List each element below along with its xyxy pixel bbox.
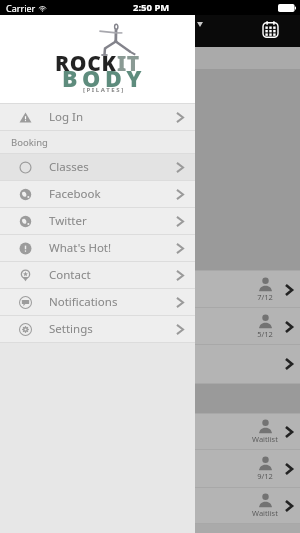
button[interactable]: 5/12 <box>0 308 300 344</box>
button[interactable]: Log In <box>0 104 195 130</box>
staticText: 9/12 <box>257 471 273 481</box>
staticText: Waitlist <box>252 434 278 444</box>
button[interactable]: Classes <box>0 154 195 180</box>
button[interactable]: Settings <box>0 316 195 342</box>
staticText: Facebook <box>49 186 101 202</box>
staticText: Twitter <box>49 213 87 229</box>
staticText: Log In <box>49 109 84 125</box>
button[interactable]: 9/12 <box>0 450 300 487</box>
staticText: Carrier <box>6 2 36 14</box>
staticText: BODY <box>62 62 147 93</box>
staticText: IT <box>117 49 140 78</box>
staticText: 5/12 <box>257 329 273 339</box>
staticText: What's Hot! <box>49 240 112 256</box>
button[interactable]: Twitter <box>0 208 195 234</box>
button[interactable]: Waitlist <box>0 488 300 523</box>
button[interactable]: Contact <box>0 262 195 288</box>
staticText: ROCK <box>55 49 117 78</box>
button[interactable]: 7/12 <box>0 271 300 307</box>
button[interactable]: Notifications <box>0 289 195 315</box>
staticText: Settings <box>49 321 93 337</box>
staticText: Waitlist <box>252 508 278 518</box>
button[interactable] <box>0 345 300 383</box>
staticText: [ P I L A T E S ] <box>83 86 124 94</box>
staticText: 7/12 <box>257 292 273 302</box>
staticText: Booking <box>11 136 48 149</box>
staticText: Contact <box>49 267 91 283</box>
staticText: Classes <box>49 159 89 175</box>
staticText: Notifications <box>49 294 118 310</box>
staticText: 2:50 PM <box>133 1 170 14</box>
button[interactable]: Waitlist <box>0 414 300 449</box>
button[interactable]: Calendar <box>262 21 286 45</box>
button[interactable]: What's Hot! <box>0 235 195 261</box>
button[interactable]: Facebook <box>0 181 195 207</box>
